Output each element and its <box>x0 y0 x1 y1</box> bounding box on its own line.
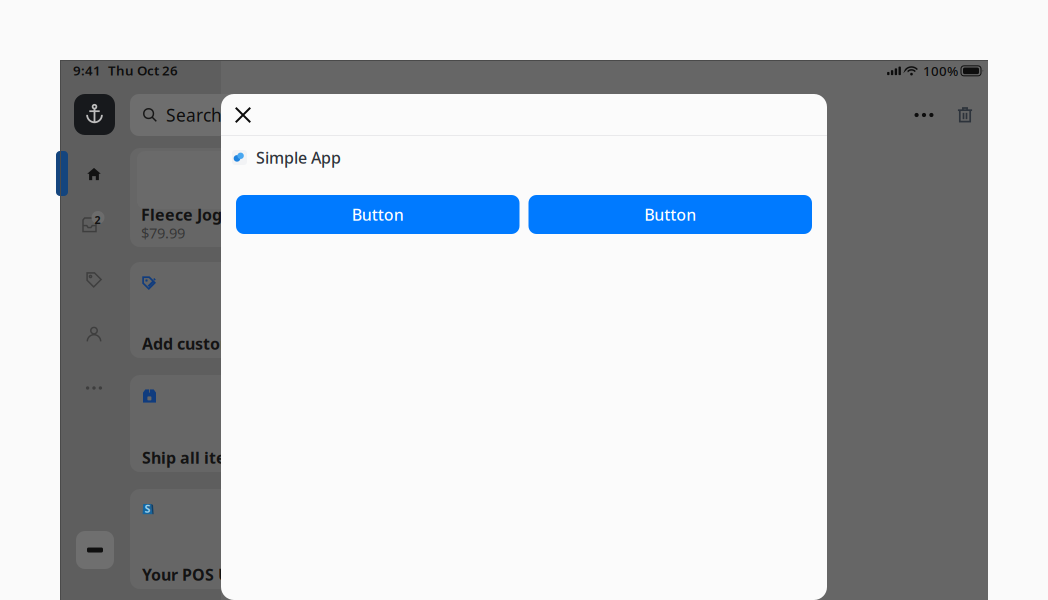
staticText: 9:41 <box>73 61 101 79</box>
button[interactable]: Button <box>528 195 812 234</box>
button[interactable]: Orders <box>74 208 114 240</box>
button[interactable]: App home <box>74 94 115 135</box>
staticText: Button <box>352 204 404 225</box>
button[interactable]: More <box>74 372 114 404</box>
staticText: 2 <box>94 213 100 227</box>
staticText: Button <box>644 204 696 225</box>
button[interactable]: Home <box>74 158 114 190</box>
staticText: Ship all items separately <box>142 447 340 468</box>
button[interactable]: Button <box>236 195 519 234</box>
staticText: Thu Oct 26 <box>108 61 178 79</box>
button[interactable]: Hide keyboard <box>76 531 114 569</box>
button[interactable]: Close <box>226 98 260 132</box>
staticText: Search <box>166 103 222 126</box>
staticText: Your POS UI extension <box>142 564 318 585</box>
staticText: Add custom discount <box>142 333 308 354</box>
button[interactable]: Delete <box>950 100 980 130</box>
button[interactable]: More options <box>909 100 939 130</box>
button[interactable]: Products <box>74 264 114 296</box>
staticText: 100% <box>923 62 958 80</box>
staticText: Simple App <box>256 147 341 168</box>
staticText: Fleece Jogger <box>141 204 249 225</box>
button[interactable]: Customers <box>74 318 114 350</box>
button[interactable]: Search <box>130 94 790 136</box>
staticText: $79.99 <box>141 223 185 242</box>
staticText: S <box>144 502 150 516</box>
